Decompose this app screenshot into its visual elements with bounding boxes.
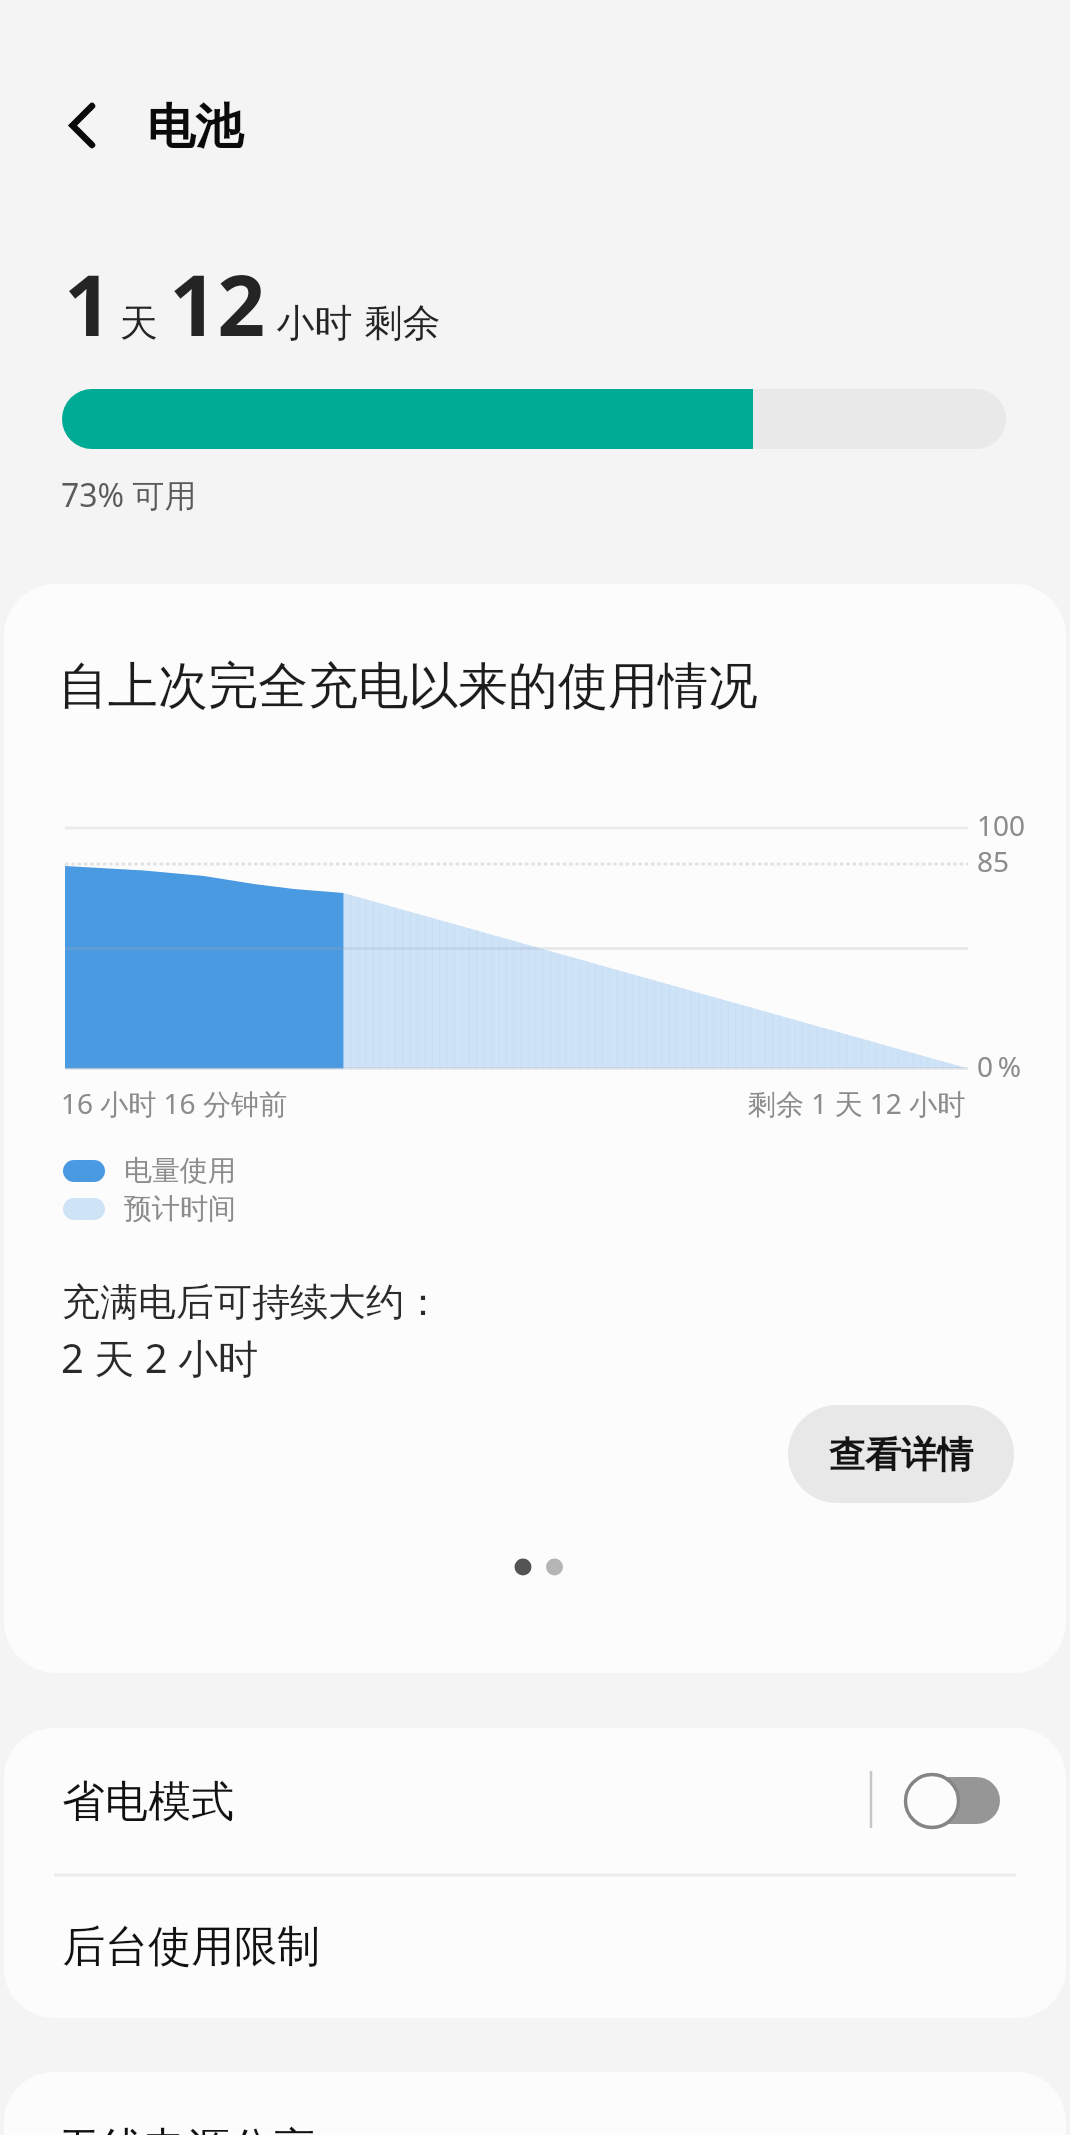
staticText: 100 (977, 806, 1026, 844)
staticText: 自上次完全充电以来的使用情况 (58, 655, 758, 718)
button[interactable]: 后台使用限制 (4, 1875, 1066, 2018)
staticText: 1 天 12 小时 剩余 (64, 246, 441, 360)
staticText: 电量使用 (124, 1153, 236, 1188)
button[interactable]: 省电模式 (4, 1728, 1066, 1875)
staticText: 2 天 2 小时 (61, 1330, 258, 1385)
button[interactable]: 查看详情 (788, 1405, 1014, 1503)
staticText: 0 % (977, 1047, 1021, 1085)
button[interactable]: Back (40, 85, 120, 165)
staticText: 充满电后可持续大约： (62, 1278, 442, 1326)
staticText: 查看详情 (829, 1432, 973, 1477)
staticText: 省电模式 (62, 1775, 234, 1829)
button[interactable]: Power saving mode toggle (899, 1768, 1007, 1836)
button[interactable]: 无线电源分享 (4, 2072, 1066, 2135)
staticText: 后台使用限制 (62, 1920, 320, 1974)
staticText: 预计时间 (124, 1191, 236, 1226)
staticText: 电池 (147, 97, 243, 157)
staticText: 无线电源分享 (58, 2122, 316, 2135)
staticText: 16 小时 16 分钟前 (61, 1084, 287, 1122)
staticText: 剩余 1 天 12 小时 (748, 1084, 966, 1122)
staticText: 73% 可用 (61, 473, 197, 517)
staticText: 85 (977, 842, 1010, 880)
